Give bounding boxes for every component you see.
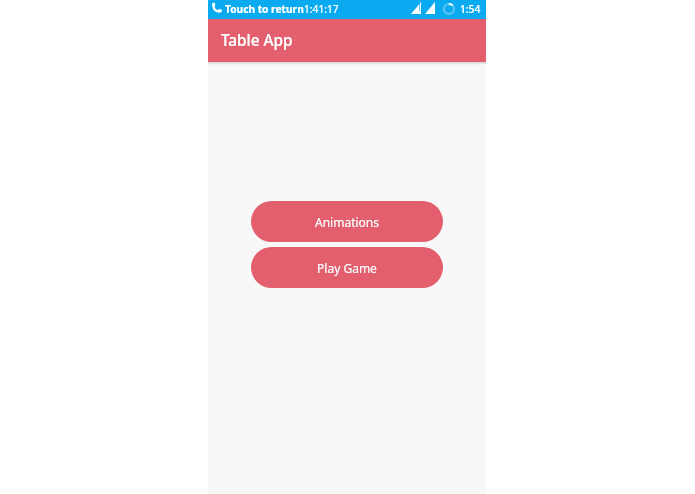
- button[interactable]: Touch to return to call: [208, 0, 486, 19]
- other: Ongoing call: [211, 2, 223, 14]
- other: Mobile signal: [411, 2, 421, 14]
- staticText: 1:54: [460, 2, 481, 16]
- other: Battery: [443, 3, 455, 15]
- button[interactable]: Play Game: [251, 247, 443, 288]
- staticText: Touch to return: [225, 2, 304, 16]
- other: Mobile signal: [425, 2, 435, 14]
- staticText: Animations: [315, 214, 379, 230]
- staticText: Play Game: [317, 260, 377, 276]
- staticText: Table App: [221, 30, 293, 51]
- button[interactable]: Animations: [251, 201, 443, 242]
- staticText: 1:41:17: [304, 2, 339, 16]
